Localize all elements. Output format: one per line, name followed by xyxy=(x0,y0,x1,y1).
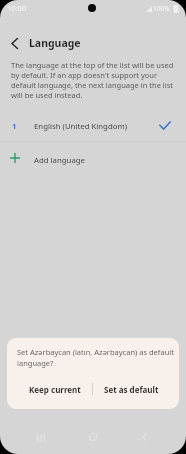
staticText: English (United Kingdom) xyxy=(34,121,128,132)
staticText: Add language xyxy=(34,155,85,166)
staticText: Keep current xyxy=(29,384,81,395)
button[interactable]: Set as default xyxy=(93,380,169,398)
staticText: Set Azərbaycan (latın, Azərbaycan) as de… xyxy=(17,347,174,368)
staticText: 10:00 xyxy=(7,3,27,13)
staticText: 1 xyxy=(12,121,17,132)
button[interactable]: Keep current xyxy=(17,380,92,398)
staticText: 100% xyxy=(153,4,170,13)
button[interactable]: Add language xyxy=(0,145,186,173)
staticText: The language at the top of the list will… xyxy=(11,60,174,100)
staticText: Set as default xyxy=(104,384,159,395)
button[interactable] xyxy=(84,428,102,446)
button[interactable] xyxy=(4,33,26,53)
staticText: Language xyxy=(29,36,81,50)
button[interactable]: 1 xyxy=(0,112,186,141)
